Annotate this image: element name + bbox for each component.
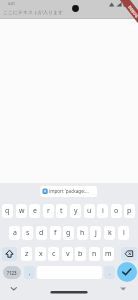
button[interactable]: [2, 247, 17, 261]
button[interactable]: .: [104, 266, 115, 279]
button[interactable]: b: [75, 247, 86, 261]
staticText: a: [13, 228, 17, 238]
staticText: u: [87, 206, 92, 216]
button[interactable]: t: [56, 204, 67, 218]
button[interactable]: [121, 247, 137, 261]
button[interactable]: w: [16, 204, 27, 218]
staticText: ここにテキストが入ります: [3, 9, 63, 15]
button[interactable]: ,: [24, 266, 35, 279]
staticText: r: [47, 206, 50, 216]
button[interactable]: ?123: [3, 266, 21, 279]
staticText: i: [102, 206, 104, 216]
staticText: e: [33, 206, 37, 216]
staticText: k: [108, 228, 112, 238]
staticText: d: [39, 228, 44, 238]
button[interactable]: n: [89, 247, 100, 261]
button[interactable]: u: [84, 204, 95, 218]
button[interactable]: p: [124, 204, 135, 218]
staticText: w: [19, 206, 25, 216]
staticText: m: [105, 249, 112, 259]
staticText: 4:41: [8, 1, 15, 6]
staticText: v: [66, 249, 70, 259]
button[interactable]: l: [118, 226, 129, 240]
staticText: l: [123, 228, 125, 238]
button[interactable]: i: [97, 204, 108, 218]
staticText: q: [5, 206, 10, 216]
button[interactable]: e: [29, 204, 40, 218]
staticText: s: [26, 228, 30, 238]
button[interactable]: z: [21, 247, 32, 261]
staticText: h: [80, 228, 85, 238]
button[interactable]: o: [111, 204, 122, 218]
staticText: ?123: [7, 270, 17, 276]
staticText: import 'package:...: [49, 188, 89, 194]
button[interactable]: x: [35, 247, 46, 261]
button[interactable]: q: [2, 204, 13, 218]
button[interactable]: d: [36, 226, 47, 240]
staticText: x: [39, 249, 43, 259]
staticText: o: [114, 206, 119, 216]
staticText: c: [52, 249, 56, 259]
staticText: z: [25, 249, 29, 259]
staticText: j: [95, 228, 97, 238]
button[interactable]: c: [48, 247, 59, 261]
staticText: t: [60, 206, 63, 216]
staticText: f: [54, 228, 57, 238]
button[interactable]: a: [9, 226, 20, 240]
button[interactable]: k: [104, 226, 115, 240]
button[interactable]: y: [70, 204, 81, 218]
staticText: ,: [29, 269, 31, 277]
staticText: n: [92, 249, 97, 259]
button[interactable]: g: [63, 226, 74, 240]
button[interactable]: j: [90, 226, 101, 240]
staticText: DEBUG: [127, 5, 138, 19]
staticText: g: [66, 228, 71, 238]
staticText: y: [74, 206, 78, 216]
button[interactable]: import 'package:...: [40, 186, 97, 197]
button[interactable]: f: [50, 226, 61, 240]
button[interactable]: s: [22, 226, 33, 240]
staticText: .: [109, 269, 111, 277]
button[interactable]: [117, 262, 137, 282]
staticText: b: [78, 249, 83, 259]
button[interactable]: h: [77, 226, 88, 240]
button[interactable]: r: [43, 204, 54, 218]
staticText: p: [127, 206, 132, 216]
button[interactable]: v: [62, 247, 73, 261]
button[interactable]: m: [103, 247, 114, 261]
